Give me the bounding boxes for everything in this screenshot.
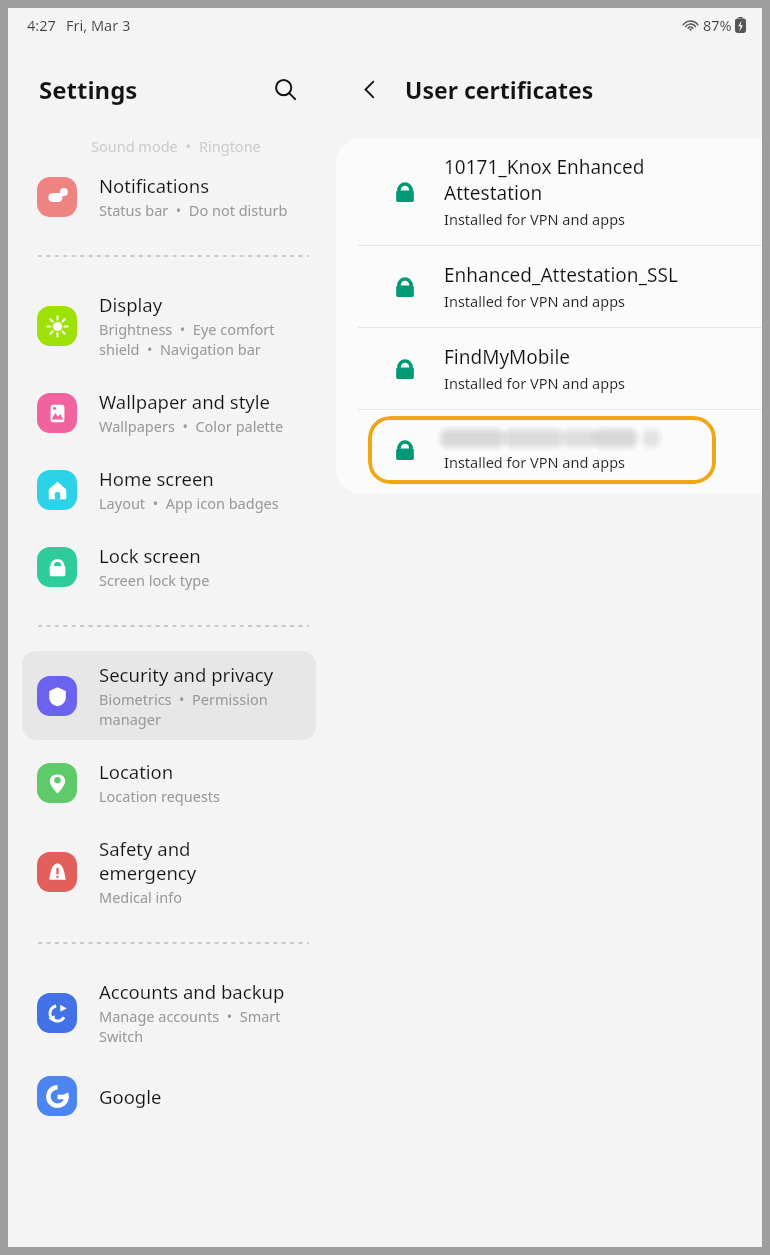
button[interactable]: FindMyMobile — [336, 328, 762, 409]
staticText: Medical info — [99, 887, 183, 907]
button[interactable]: Home screen — [22, 455, 316, 524]
button[interactable]: Location — [22, 748, 316, 817]
staticText: Accounts and backup — [99, 979, 285, 1004]
staticText: 87% — [703, 15, 732, 35]
staticText: Installed for VPN and apps — [444, 291, 626, 311]
staticText: Fri, Mar 3 — [66, 15, 131, 35]
button[interactable]: Wallpaper and style — [22, 378, 316, 447]
staticText: Wallpaper and style — [99, 389, 270, 414]
staticText: • — [178, 136, 199, 156]
staticText: Screen lock type — [99, 570, 210, 590]
staticText: Location requests — [99, 786, 221, 806]
button[interactable]: Display — [22, 281, 316, 370]
button[interactable]: Back — [348, 67, 392, 111]
staticText: Safety and emergency — [99, 836, 197, 885]
button[interactable]: Accounts and backup — [22, 968, 316, 1057]
staticText: 4:27 — [27, 15, 56, 35]
staticText: Lock screen — [99, 543, 201, 568]
staticText: Home screen — [99, 466, 214, 491]
button[interactable]: Security and privacy — [22, 651, 316, 740]
button[interactable]: Lock screen — [22, 532, 316, 601]
staticText: Installed for VPN and apps — [444, 373, 626, 393]
staticText: Biometrics • Permission manager — [99, 689, 268, 729]
staticText: Status bar • Do not disturb — [99, 200, 288, 220]
staticText: FindMyMobile — [444, 344, 571, 370]
staticText: User certificates — [405, 74, 594, 105]
staticText: Wallpapers • Color palette — [99, 416, 284, 436]
staticText: Ringtone — [199, 136, 261, 156]
button[interactable]: Google — [22, 1065, 316, 1127]
staticText: Brightness • Eye comfort shield • Naviga… — [99, 319, 275, 359]
staticText: Sound mode — [91, 136, 178, 156]
staticText: Google — [99, 1084, 162, 1109]
staticText: Location — [99, 759, 174, 784]
button[interactable]: Safety and emergency — [22, 825, 316, 918]
staticText: Settings — [39, 73, 138, 106]
staticText: Manage accounts • Smart Switch — [99, 1006, 281, 1046]
staticText: Installed for VPN and apps — [444, 452, 626, 472]
staticText: Display — [99, 292, 163, 317]
staticText: 10171_Knox Enhanced Attestation — [444, 154, 645, 206]
staticText: Layout • App icon badges — [99, 493, 279, 513]
staticText: Security and privacy — [99, 662, 274, 687]
button[interactable]: 10171_Knox Enhanced Attestation — [336, 138, 762, 245]
button[interactable]: Notifications — [22, 162, 316, 231]
staticText: Enhanced_Attestation_SSL — [444, 262, 678, 288]
button[interactable]: Installed for VPN and apps — [368, 416, 716, 484]
staticText: Notifications — [99, 173, 210, 198]
button[interactable]: Search — [263, 67, 307, 111]
button[interactable]: Enhanced_Attestation_SSL — [336, 246, 762, 327]
staticText: Installed for VPN and apps — [444, 209, 626, 229]
